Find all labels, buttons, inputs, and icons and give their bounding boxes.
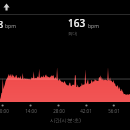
button[interactable]: Back xyxy=(1,1,13,13)
staticText: bpm xyxy=(5,23,16,30)
staticText: 00:00 xyxy=(0,108,12,114)
button[interactable]: Heart rate chart xyxy=(0,61,130,102)
staticText: 14:00 xyxy=(22,108,40,114)
staticText: 시간(시:분:초) xyxy=(50,117,81,124)
staticText: 최대 xyxy=(68,31,77,37)
staticText: 163 xyxy=(68,16,86,30)
staticText: bpm xyxy=(88,23,99,30)
staticText: 28:00 xyxy=(50,108,68,114)
staticText: 42:01 xyxy=(77,108,95,114)
staticText: 56:01 xyxy=(105,108,123,114)
staticText: 8 xyxy=(0,18,4,30)
